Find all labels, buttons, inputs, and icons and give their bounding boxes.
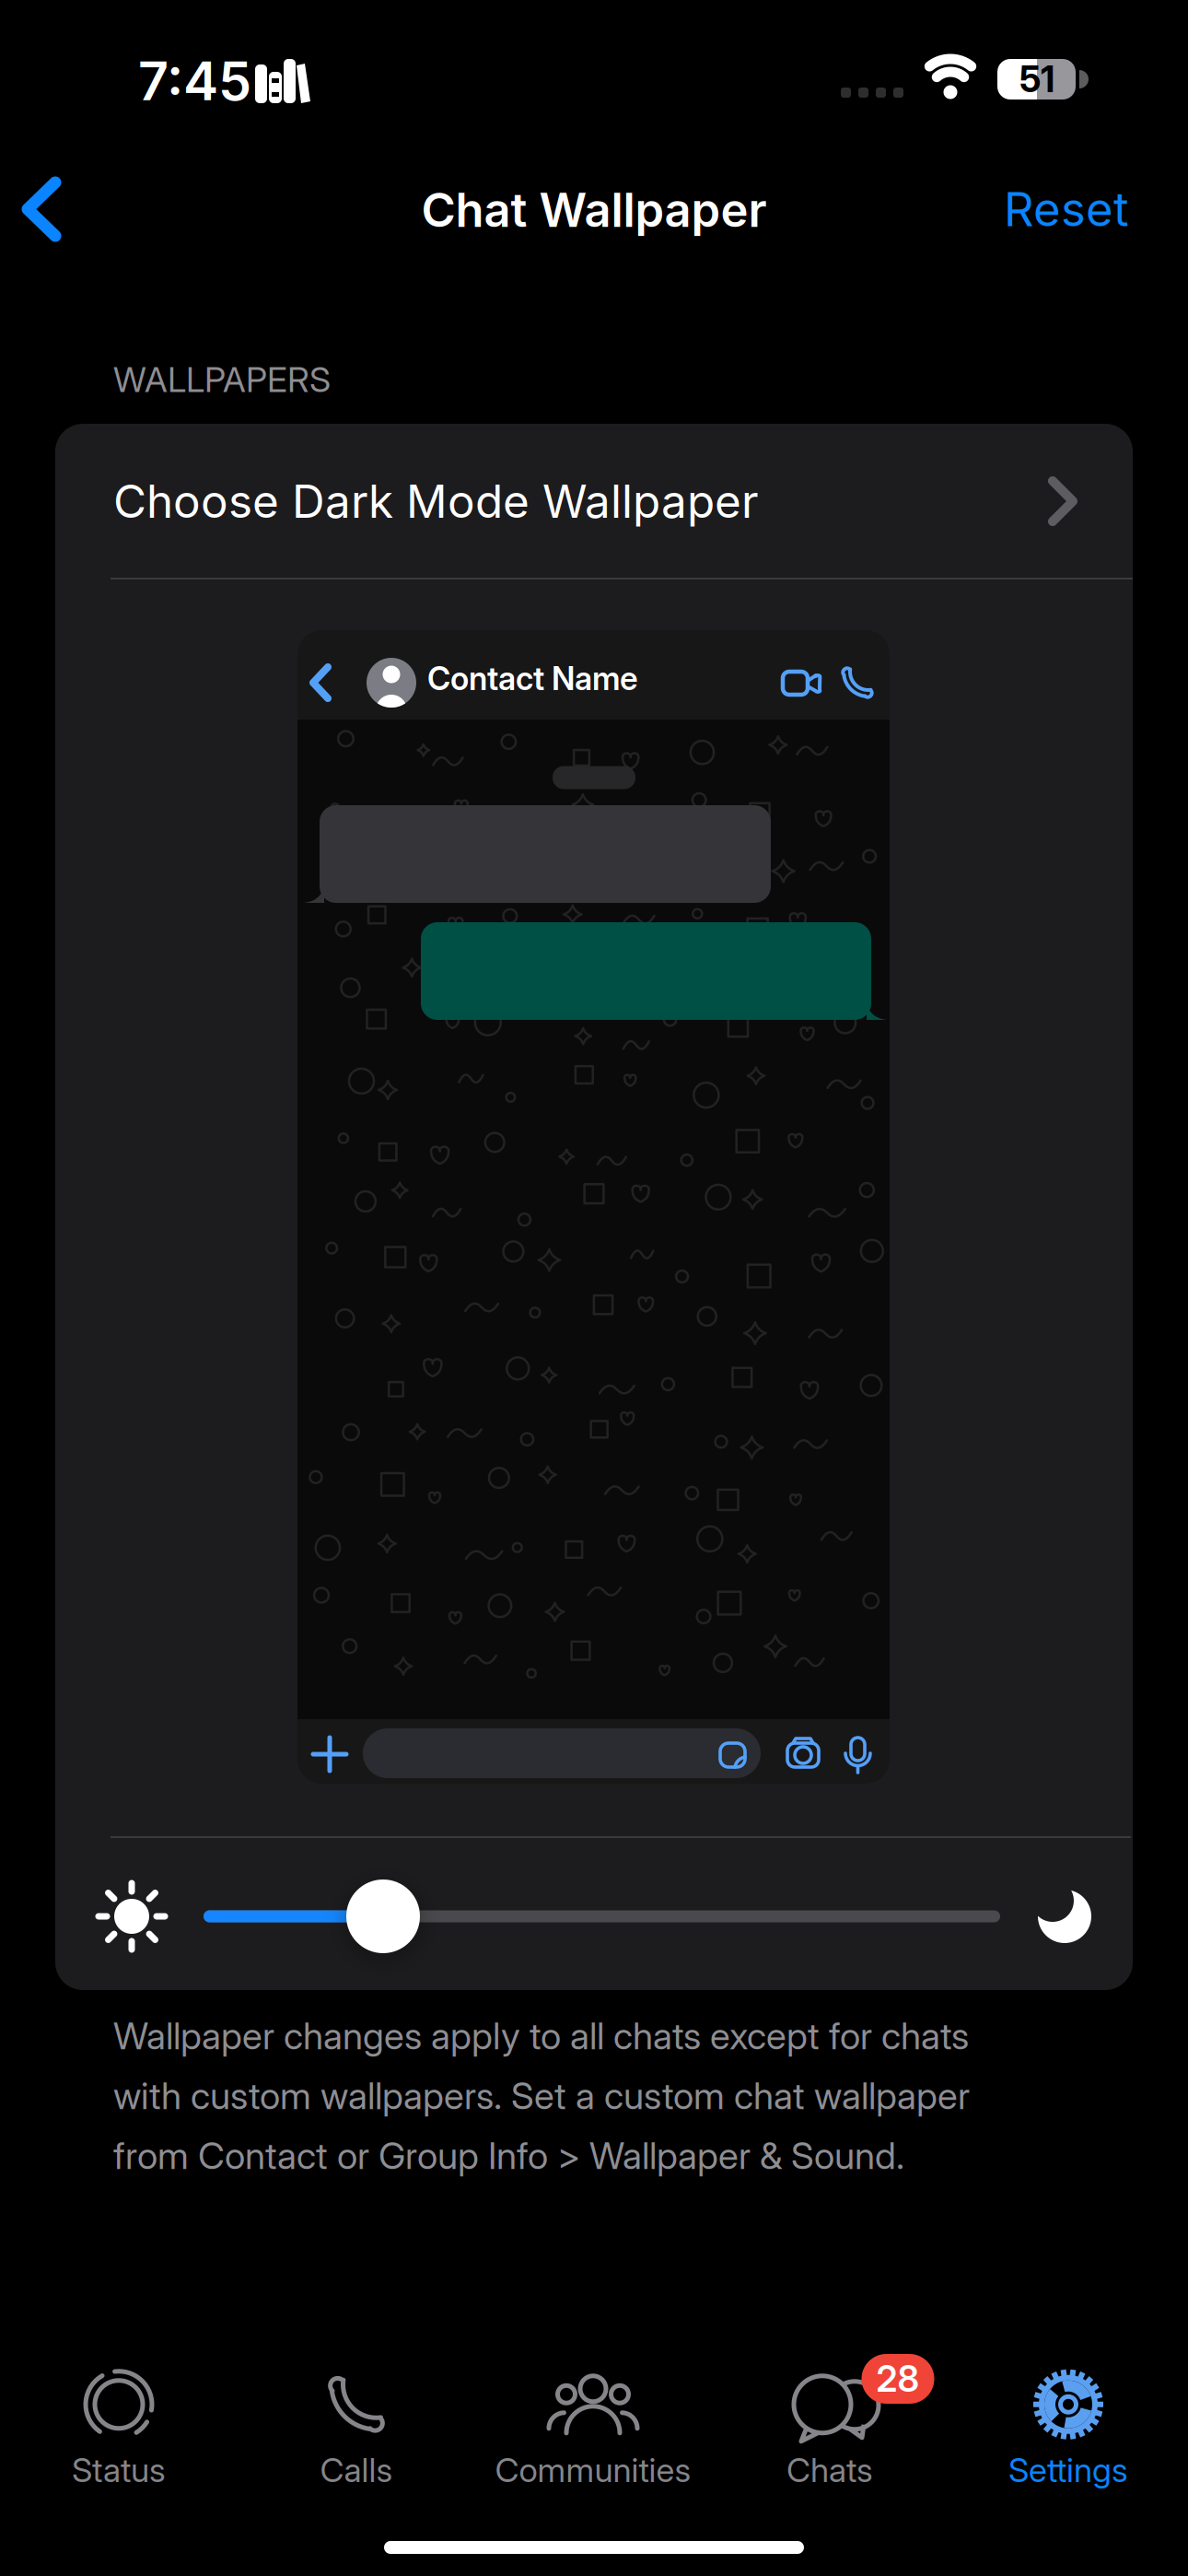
staticText: 28	[876, 2358, 920, 2400]
button[interactable]: Choose Dark Mode Wallpaper	[55, 425, 1133, 578]
staticText: WALLPAPERS	[113, 359, 331, 400]
staticText: Status	[72, 2451, 166, 2490]
staticText: Wallpaper changes apply to all chats exc…	[113, 2014, 969, 2057]
button[interactable]: Settings	[949, 2359, 1187, 2498]
staticText: with custom wallpapers. Set a custom cha…	[113, 2074, 970, 2117]
button[interactable]: Status	[0, 2359, 238, 2498]
button[interactable]: Back	[7, 170, 81, 249]
staticText: Choose Dark Mode Wallpaper	[113, 474, 759, 528]
staticText: Chat Wallpaper	[421, 182, 767, 238]
staticText: 51	[1019, 58, 1054, 100]
staticText: Contact Name	[427, 660, 638, 697]
button[interactable]: Reset	[1004, 182, 1129, 237]
staticText: from Contact or Group Info > Wallpaper &…	[113, 2134, 904, 2177]
button[interactable]: Chats	[711, 2359, 949, 2498]
staticText: Calls	[320, 2451, 393, 2490]
staticText: Communities	[495, 2451, 691, 2490]
staticText: Chats	[786, 2451, 873, 2490]
button[interactable]: Communities	[474, 2359, 712, 2498]
staticText: 7:45	[138, 50, 251, 112]
staticText: Settings	[1008, 2451, 1128, 2490]
button[interactable]: Calls	[238, 2359, 475, 2498]
staticText: Reset	[1004, 182, 1129, 237]
